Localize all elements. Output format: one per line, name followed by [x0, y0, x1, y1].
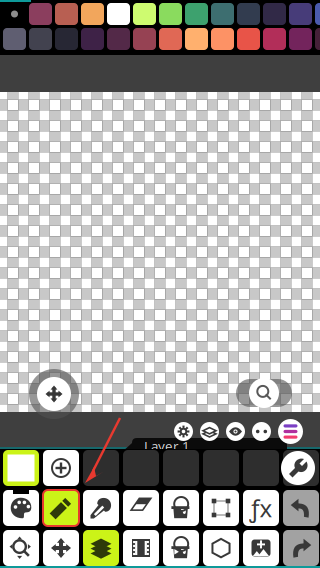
- button[interactable]: Undo: [283, 490, 319, 526]
- button[interactable]: Colour swatch: [133, 3, 156, 25]
- button[interactable]: Fill: [163, 490, 199, 526]
- button[interactable]: Toggle visibility: [226, 422, 245, 441]
- button[interactable]: Colour swatch: [263, 3, 286, 25]
- button[interactable]: More options: [252, 422, 271, 441]
- button[interactable]: Redo: [283, 530, 319, 566]
- button[interactable]: Colour swatch: [55, 28, 78, 50]
- button[interactable]: Layers: [83, 530, 119, 566]
- button[interactable]: Move: [43, 530, 79, 566]
- button[interactable]: Colour swatch: [29, 3, 52, 25]
- button[interactable]: Colour swatch: [55, 3, 78, 25]
- button[interactable]: Current colour: [3, 450, 39, 486]
- button[interactable]: Colour swatch: [29, 28, 52, 50]
- button[interactable]: Zoom: [3, 530, 39, 566]
- button[interactable]: Colour swatch: [3, 28, 26, 50]
- button[interactable]: Colour swatch: [237, 28, 260, 50]
- button[interactable]: Layer 1: [122, 438, 287, 452]
- button[interactable]: Pencil: [43, 490, 79, 526]
- button[interactable]: Colour swatch: [185, 3, 208, 25]
- staticText: Layer 1: [144, 437, 190, 455]
- button[interactable]: Colour swatch: [211, 3, 234, 25]
- button[interactable]: Palette: [3, 490, 39, 526]
- staticText: ƒx: [249, 492, 272, 524]
- button[interactable]: Colour swatch: [159, 3, 182, 25]
- button[interactable]: Transparent: [3, 3, 26, 25]
- button[interactable]: Empty palette slot: [243, 450, 279, 486]
- button[interactable]: Frames: [123, 530, 159, 566]
- button[interactable]: Colour swatch: [289, 3, 312, 25]
- button[interactable]: Empty palette slot: [283, 450, 319, 486]
- button[interactable]: Colour swatch: [289, 28, 312, 50]
- button[interactable]: Empty palette slot: [123, 450, 159, 486]
- button[interactable]: Empty palette slot: [203, 450, 239, 486]
- button[interactable]: Colour swatch: [81, 3, 104, 25]
- button[interactable]: Effects: [243, 490, 279, 526]
- button[interactable]: Colour swatch: [237, 3, 260, 25]
- button[interactable]: Eraser: [123, 490, 159, 526]
- button[interactable]: Colour swatch: [107, 28, 130, 50]
- button[interactable]: Layers: [200, 422, 219, 441]
- button[interactable]: Colour swatch: [263, 28, 286, 50]
- button[interactable]: Colour swatch: [315, 3, 320, 25]
- button[interactable]: Menu: [278, 419, 303, 444]
- button[interactable]: Shapes: [203, 530, 239, 566]
- button[interactable]: Zoom: [236, 378, 292, 408]
- button[interactable]: Preferences: [281, 451, 315, 485]
- button[interactable]: Add image: [243, 530, 279, 566]
- button[interactable]: Colour swatch: [185, 28, 208, 50]
- button[interactable]: Select: [203, 490, 239, 526]
- button[interactable]: Empty palette slot: [163, 450, 199, 486]
- button[interactable]: Colour swatch: [315, 28, 320, 50]
- button[interactable]: Settings: [174, 422, 193, 441]
- button[interactable]: Colour swatch: [133, 28, 156, 50]
- button[interactable]: Colour swatch: [159, 28, 182, 50]
- button[interactable]: Colour swatch: [211, 28, 234, 50]
- button[interactable]: Colour picker: [83, 490, 119, 526]
- button[interactable]: Colour swatch: [107, 3, 130, 25]
- button[interactable]: Colour swatch: [81, 28, 104, 50]
- button[interactable]: Add colour: [43, 450, 79, 486]
- button[interactable]: Pan canvas: [29, 369, 79, 419]
- button[interactable]: Empty palette slot: [83, 450, 119, 486]
- button[interactable]: Gradient fill: [163, 530, 199, 566]
